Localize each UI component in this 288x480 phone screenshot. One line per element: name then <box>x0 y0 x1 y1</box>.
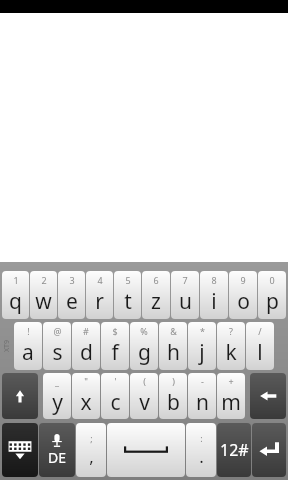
staticText: g <box>138 338 151 367</box>
button[interactable]: Hide keyboard <box>2 423 38 477</box>
staticText: / <box>258 325 262 337</box>
staticText: ' <box>114 375 117 387</box>
button[interactable]: @ <box>43 322 71 370</box>
button[interactable]: 9 <box>229 271 257 319</box>
staticText: r <box>95 287 104 316</box>
button[interactable]: * <box>188 322 216 370</box>
button[interactable]: Backspace <box>250 373 286 419</box>
button[interactable]: ) <box>159 373 187 419</box>
staticText: ! <box>27 325 30 337</box>
staticText: 4 <box>97 274 103 286</box>
staticText: 9 <box>240 274 246 286</box>
staticText: & <box>170 325 177 337</box>
staticText: DE <box>48 448 67 467</box>
button[interactable]: % <box>130 322 158 370</box>
staticText: n <box>196 388 209 417</box>
staticText: f <box>111 338 119 367</box>
staticText: u <box>179 287 192 316</box>
staticText: 1 <box>13 274 19 286</box>
staticText: * <box>200 325 205 337</box>
staticText: ) <box>172 375 175 387</box>
staticText: z <box>151 287 161 316</box>
button[interactable]: 1 <box>2 271 29 319</box>
staticText: + <box>228 375 234 387</box>
staticText: q <box>9 287 22 316</box>
staticText: c <box>110 388 121 417</box>
staticText: . <box>199 445 204 468</box>
button[interactable]: 8 <box>200 271 228 319</box>
button[interactable]: Shift <box>2 373 38 419</box>
button[interactable]: 3 <box>58 271 85 319</box>
staticText: 3 <box>69 274 75 286</box>
staticText: 7 <box>182 274 188 286</box>
button[interactable]: - <box>188 373 216 419</box>
staticText: k <box>225 338 237 367</box>
staticText: 5 <box>125 274 131 286</box>
staticText: _ <box>55 375 59 387</box>
staticText: v <box>139 388 150 417</box>
staticText: ( <box>143 375 146 387</box>
button[interactable]: ' <box>101 373 129 419</box>
button[interactable]: " <box>72 373 100 419</box>
staticText: p <box>266 287 279 316</box>
staticText: " <box>84 375 88 387</box>
staticText: e <box>66 287 78 316</box>
button[interactable]: ( <box>130 373 158 419</box>
staticText: 2 <box>41 274 47 286</box>
button[interactable]: Enter <box>252 423 286 477</box>
staticText: t <box>124 287 132 316</box>
staticText: s <box>52 338 63 367</box>
staticText: % <box>140 325 148 337</box>
staticText: XT9 <box>2 340 12 352</box>
staticText: i <box>211 287 217 316</box>
staticText: h <box>167 338 180 367</box>
button[interactable]: Voice input, German <box>39 423 75 477</box>
button[interactable]: 5 <box>114 271 141 319</box>
button[interactable]: ? <box>217 322 245 370</box>
staticText: : <box>200 432 203 444</box>
staticText: 0 <box>269 274 275 286</box>
staticText: # <box>83 325 89 337</box>
button[interactable]: ; <box>76 423 106 477</box>
staticText: 8 <box>211 274 217 286</box>
staticText: l <box>257 338 263 367</box>
button[interactable]: # <box>72 322 100 370</box>
staticText: j <box>199 338 205 367</box>
button[interactable]: 6 <box>142 271 170 319</box>
staticText: x <box>80 388 92 417</box>
staticText: ; <box>90 432 93 444</box>
staticText: @ <box>53 325 62 337</box>
button[interactable]: : <box>186 423 216 477</box>
staticText: m <box>221 388 241 417</box>
button[interactable]: & <box>159 322 187 370</box>
staticText: 6 <box>153 274 159 286</box>
button[interactable]: ! <box>14 322 42 370</box>
button[interactable]: _ <box>43 373 71 419</box>
staticText: $ <box>112 325 118 337</box>
button[interactable]: Space <box>107 423 185 477</box>
button[interactable]: $ <box>101 322 129 370</box>
button[interactable]: 0 <box>258 271 286 319</box>
staticText: 12# <box>220 439 249 461</box>
button[interactable]: 2 <box>30 271 57 319</box>
button[interactable]: 4 <box>86 271 113 319</box>
staticText: - <box>201 375 204 387</box>
staticText: y <box>52 388 63 417</box>
button[interactable]: + <box>217 373 245 419</box>
staticText: o <box>237 287 250 316</box>
button[interactable]: Symbols <box>217 423 251 477</box>
staticText: , <box>89 445 94 468</box>
button[interactable]: / <box>246 322 274 370</box>
button[interactable]: 7 <box>171 271 199 319</box>
staticText: a <box>22 338 34 367</box>
staticText: ? <box>229 325 233 337</box>
staticText: d <box>80 338 93 367</box>
staticText: w <box>35 287 52 316</box>
staticText: b <box>167 388 180 417</box>
